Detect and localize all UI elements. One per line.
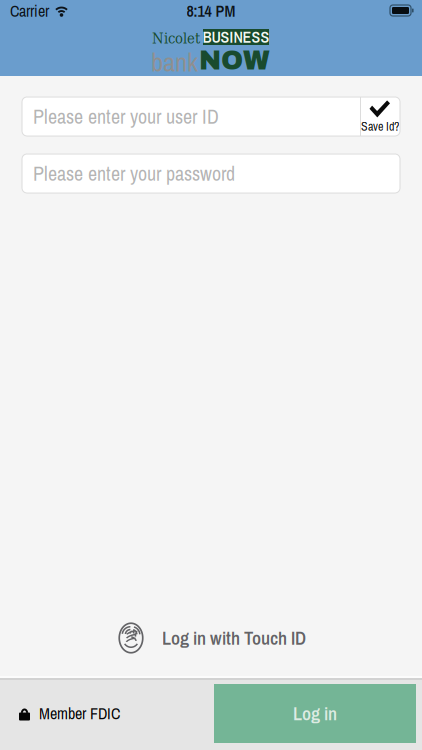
staticText: Log in: [293, 701, 337, 726]
button[interactable]: Log in: [214, 684, 416, 743]
staticText: Save Id?: [361, 118, 399, 135]
staticText: Please enter your password: [33, 160, 235, 187]
staticText: NOW: [199, 46, 270, 75]
staticText: Nicolet: [152, 30, 200, 47]
staticText: 8:14 PM: [186, 0, 235, 22]
staticText: Carrier: [10, 0, 49, 22]
button[interactable]: Log in with Touch ID: [117, 620, 310, 656]
staticText: Please enter your user ID: [33, 103, 219, 130]
staticText: Member FDIC: [39, 703, 120, 724]
staticText: BUSINESS: [202, 26, 269, 48]
button[interactable]: Save Id?: [360, 97, 400, 136]
staticText: Log in with Touch ID: [162, 625, 306, 650]
staticText: bank: [151, 44, 198, 80]
